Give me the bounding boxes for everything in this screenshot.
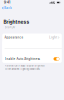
- button[interactable]: Back: [0, 5, 14, 11]
- staticText: Back: [4, 6, 12, 10]
- staticText: Appearance: [5, 36, 24, 39]
- button[interactable]: Enable Auto-Brightness: [2, 55, 62, 63]
- staticText: Light: [49, 36, 57, 39]
- staticText: Enable Auto-Brightness: [5, 57, 40, 60]
- button[interactable]: Appearance: [2, 33, 62, 41]
- staticText: 9:41: [4, 1, 10, 4]
- staticText: Automatically adapt display brightness: [4, 64, 44, 67]
- staticText: DISPLAY: [4, 26, 15, 29]
- staticText: Brightness: [3, 19, 29, 25]
- staticText: to the ambient lighting conditions.: [4, 68, 40, 71]
